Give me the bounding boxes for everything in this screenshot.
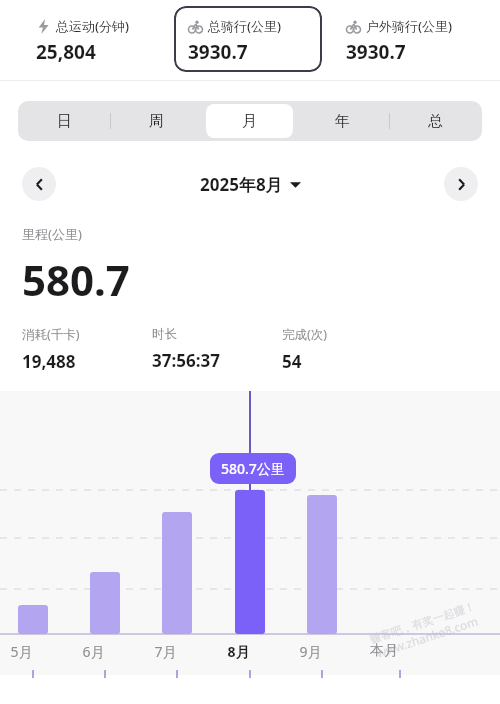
staticText: 37:56:37: [152, 349, 220, 372]
button[interactable]: 8月: [227, 642, 273, 661]
staticText: 5月: [10, 642, 33, 661]
staticText: 6月: [82, 642, 105, 661]
staticText: www.zhanke8.com: [374, 613, 480, 661]
button[interactable]: 上一月: [22, 167, 56, 201]
staticText: 时长: [152, 326, 177, 342]
staticText: 日: [57, 112, 72, 131]
staticText: 本月: [370, 642, 398, 660]
staticText: 3930.7: [188, 39, 248, 65]
staticText: 8月: [227, 642, 250, 661]
button[interactable]: 580.7公里: [221, 459, 285, 478]
staticText: 年: [335, 112, 350, 131]
button[interactable]: 下一月: [444, 167, 478, 201]
staticText: 月: [242, 112, 257, 131]
button[interactable]: 月: [206, 104, 293, 138]
button[interactable]: 9月: [299, 642, 345, 661]
button[interactable]: 5月: [10, 642, 56, 661]
staticText: 54: [282, 350, 302, 373]
button[interactable]: 户外骑行(公里): [332, 6, 492, 72]
staticText: 消耗(千卡): [22, 326, 80, 343]
staticText: 总: [428, 112, 443, 131]
staticText: 赚客吧，有奖一起赚！: [368, 599, 477, 646]
staticText: 580.7: [22, 251, 130, 308]
staticText: 3930.7: [346, 39, 406, 65]
staticText: 19,488: [22, 350, 76, 373]
staticText: 户外骑行(公里): [366, 17, 453, 35]
staticText: 2025年8月: [200, 173, 283, 196]
button[interactable]: 本月: [370, 642, 416, 660]
button[interactable]: 周: [113, 104, 200, 138]
staticText: 完成(次): [282, 326, 328, 343]
staticText: 里程(公里): [22, 225, 82, 243]
staticText: 总骑行(公里): [208, 17, 282, 35]
staticText: 7月: [154, 642, 177, 661]
button[interactable]: 6月: [82, 642, 128, 661]
button[interactable]: 年: [299, 104, 386, 138]
button[interactable]: 总骑行(公里): [174, 6, 322, 72]
staticText: 周: [149, 112, 164, 131]
staticText: 总运动(分钟): [56, 17, 130, 35]
button[interactable]: 7月: [154, 642, 200, 661]
staticText: 25,804: [36, 39, 96, 65]
button[interactable]: 日: [21, 104, 107, 138]
staticText: 580.7公里: [221, 459, 285, 478]
button[interactable]: 总: [392, 104, 479, 138]
button[interactable]: 总运动(分钟): [22, 6, 164, 72]
staticText: 9月: [299, 642, 322, 661]
